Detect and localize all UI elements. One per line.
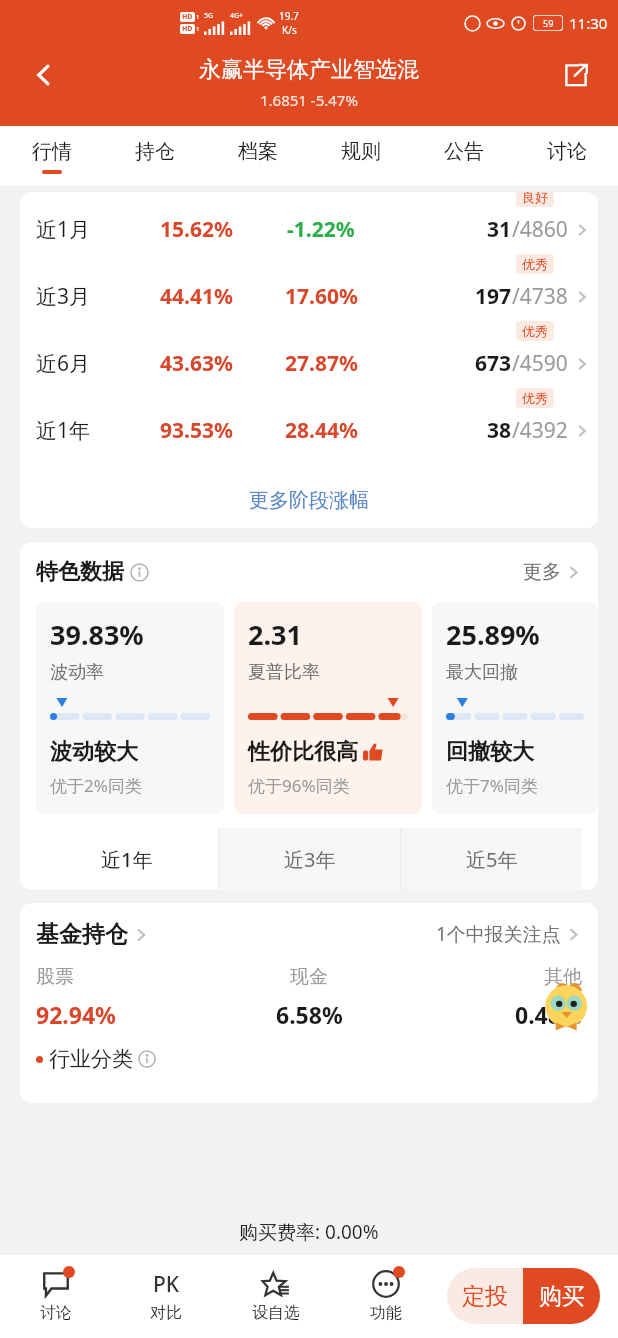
button[interactable]: 优秀 [20, 330, 598, 397]
button[interactable]: 公告 [412, 126, 515, 186]
staticText: 永赢半导体产业智选混 [199, 56, 419, 84]
staticText: 44.41% [160, 282, 233, 311]
staticText: /4590 [512, 349, 568, 378]
staticText: 59 [543, 17, 554, 29]
staticText: 0.48% [515, 999, 582, 1030]
button[interactable]: 优秀 [20, 263, 598, 330]
staticText: 31 [487, 215, 512, 244]
button[interactable]: 更多 [523, 560, 582, 584]
staticText: 11:30 [569, 13, 608, 33]
button[interactable]: 优秀 [20, 397, 598, 464]
staticText: 优于96%同类 [248, 774, 350, 797]
staticText: K/s [282, 23, 297, 37]
staticText: 4G+ [230, 11, 244, 21]
staticText: 回撤较大 [446, 738, 534, 766]
staticText: 43.63% [160, 349, 233, 378]
button[interactable]: 近5年 [401, 828, 582, 890]
button[interactable]: 持仓 [103, 126, 206, 186]
staticText: 近3年 [284, 846, 336, 873]
staticText: 93.53% [160, 416, 233, 445]
staticText: 功能 [370, 1303, 402, 1323]
staticText: 优于7%同类 [446, 774, 538, 797]
button[interactable]: 讨论 [515, 126, 618, 186]
staticText: 更多阶段涨幅 [249, 488, 369, 513]
button[interactable]: Back [22, 53, 66, 97]
staticText: 对比 [150, 1303, 182, 1323]
staticText: /4392 [512, 416, 568, 445]
button[interactable]: PK [111, 1254, 221, 1338]
staticText: 优于2%同类 [50, 774, 142, 797]
button[interactable]: 规则 [309, 126, 412, 186]
button[interactable]: 良好 [20, 196, 598, 263]
staticText: 38 [487, 416, 512, 445]
button[interactable]: 39.83% [36, 602, 224, 814]
button[interactable]: 基金持仓 [36, 920, 150, 949]
staticText: 近6月 [36, 349, 136, 378]
staticText: /4860 [512, 215, 568, 244]
staticText: 近1年 [36, 416, 136, 445]
staticText: 现金 [290, 965, 328, 989]
button[interactable]: 设自选 [221, 1254, 331, 1338]
button[interactable]: 近1年 [36, 828, 218, 890]
staticText: 2.31 [248, 616, 302, 653]
staticText: 优秀 [522, 256, 548, 272]
staticText: 行情 [32, 139, 72, 164]
button[interactable]: 2.31 [234, 602, 422, 814]
button[interactable]: 近3年 [219, 828, 400, 890]
staticText: -1.22% [287, 215, 355, 244]
staticText: 近1年 [101, 846, 153, 873]
staticText: 更多 [523, 560, 561, 584]
staticText: 夏普比率 [248, 661, 320, 684]
button[interactable]: 档案 [206, 126, 309, 186]
staticText: 17.60% [285, 282, 358, 311]
staticText: 1 [196, 25, 200, 33]
staticText: 15.62% [160, 215, 233, 244]
button[interactable]: 25.89% [432, 602, 598, 814]
staticText: 购买费率: 0.00% [239, 1219, 379, 1245]
staticText: 规则 [341, 139, 381, 164]
staticText: PK [153, 1270, 180, 1298]
staticText: 197 [475, 282, 512, 311]
button[interactable]: 定投 [447, 1268, 523, 1324]
staticText: 持仓 [135, 139, 175, 164]
staticText: 25.89% [446, 616, 540, 653]
button[interactable]: 行情 [0, 126, 103, 186]
staticText: 1个中报关注点 [436, 921, 561, 947]
button[interactable]: 行业分类 [36, 1046, 156, 1072]
staticText: 其他 [544, 965, 582, 989]
button[interactable]: 更多阶段涨幅 [20, 472, 598, 528]
staticText: 优秀 [522, 390, 548, 406]
staticText: 6.58% [276, 999, 343, 1030]
staticText: 良好 [522, 192, 548, 205]
staticText: 购买 [539, 1282, 585, 1311]
staticText: 波动率 [50, 661, 104, 684]
staticText: 近1月 [36, 215, 136, 244]
staticText: 最大回撤 [446, 661, 518, 684]
staticText: 性价比很高 [248, 738, 358, 766]
staticText: 基金持仓 [36, 920, 128, 949]
button[interactable]: 1个中报关注点 [436, 921, 582, 947]
staticText: 近5年 [466, 846, 518, 873]
button[interactable]: 购买 [523, 1268, 600, 1324]
staticText: 近3月 [36, 282, 136, 311]
staticText: HD [182, 12, 193, 22]
staticText: 5G [204, 11, 214, 21]
staticText: 档案 [238, 139, 278, 164]
staticText: 优秀 [522, 323, 548, 339]
button[interactable]: Share [554, 53, 598, 97]
staticText: 27.87% [285, 349, 358, 378]
staticText: 92.94% [36, 999, 116, 1030]
staticText: 讨论 [547, 139, 587, 164]
staticText: 公告 [444, 139, 484, 164]
staticText: 39.83% [50, 616, 144, 653]
staticText: 1 [196, 13, 200, 21]
button[interactable]: 讨论 [0, 1254, 111, 1338]
staticText: 波动较大 [50, 738, 138, 766]
staticText: 股票 [36, 965, 74, 989]
staticText: 特色数据 [36, 558, 124, 586]
staticText: /4738 [512, 282, 568, 311]
staticText: 673 [475, 349, 512, 378]
staticText: 讨论 [40, 1303, 72, 1323]
button[interactable]: 功能 [331, 1254, 441, 1338]
staticText: 行业分类 [49, 1046, 133, 1072]
